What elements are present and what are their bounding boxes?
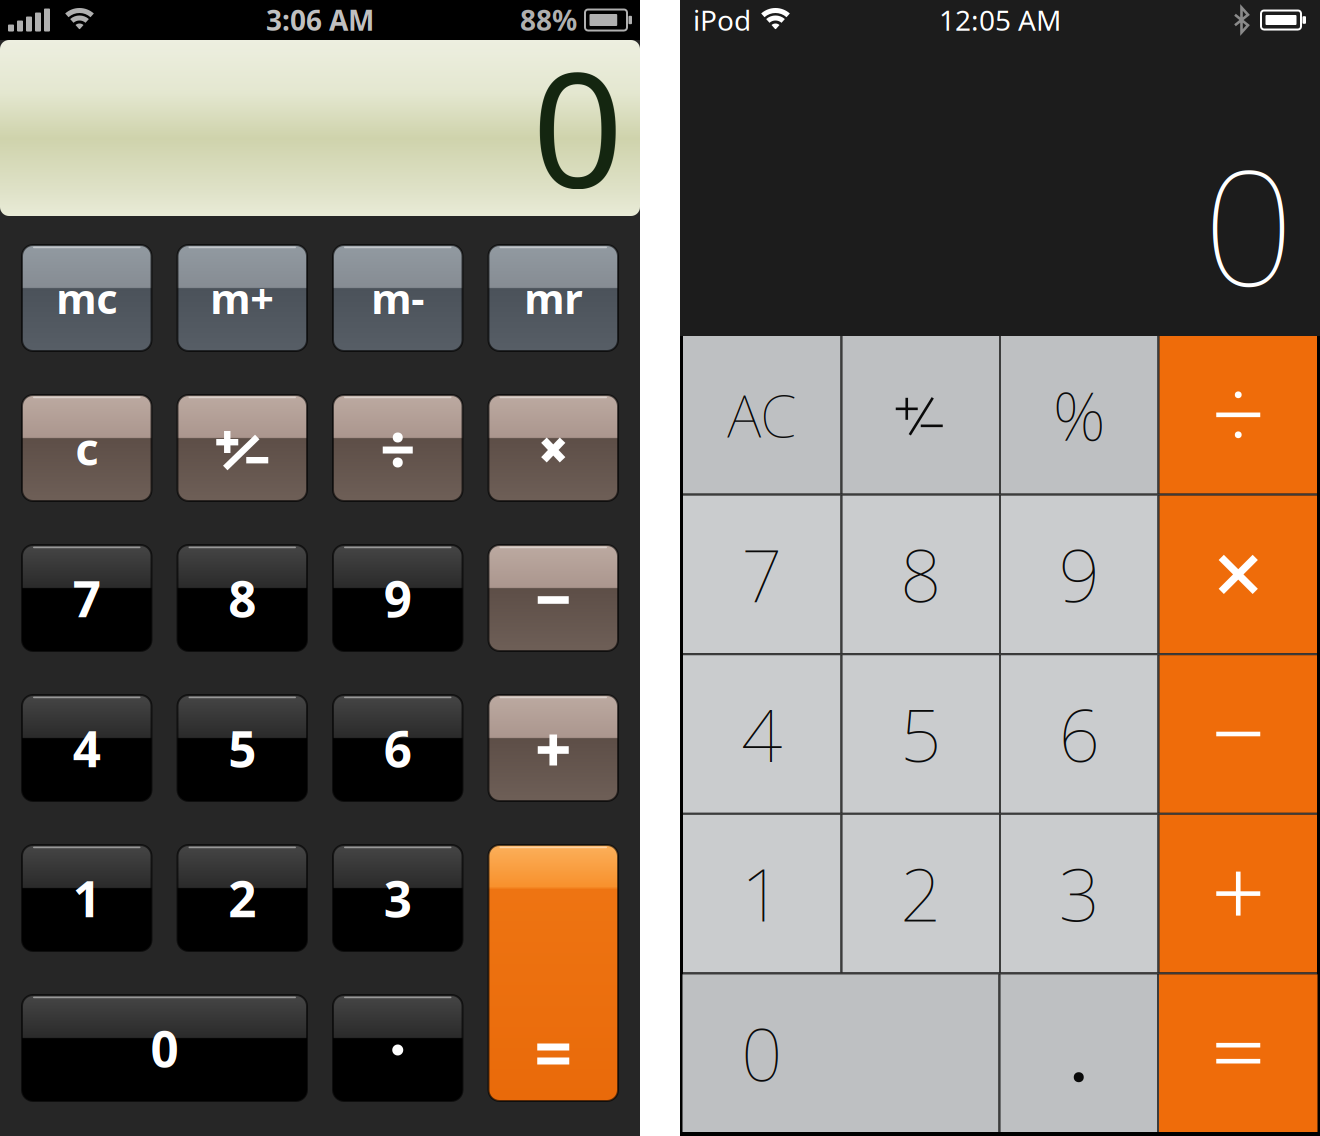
button[interactable]: 5 — [177, 695, 307, 801]
staticText: m- — [371, 271, 424, 325]
staticText: 4 — [741, 686, 782, 782]
button[interactable]: 0 — [682, 974, 998, 1132]
button[interactable]: Plus — [488, 695, 618, 801]
staticText: 7 — [741, 527, 782, 622]
staticText: m+ — [210, 271, 274, 325]
staticText: 4 — [73, 715, 101, 781]
button[interactable]: Multiply — [1159, 496, 1317, 653]
button[interactable]: 7 — [22, 545, 151, 651]
staticText: iPod — [693, 1, 751, 39]
button[interactable]: mc — [22, 245, 151, 351]
staticText: mc — [56, 271, 117, 325]
button[interactable]: Divide — [333, 395, 462, 501]
button[interactable]: Multiply — [488, 395, 618, 501]
button[interactable]: Minus — [488, 545, 618, 651]
staticText: 1 — [73, 865, 101, 931]
button[interactable]: m- — [333, 245, 462, 351]
staticText: 5 — [228, 715, 256, 781]
button[interactable]: 2 — [177, 845, 307, 951]
staticText: 2 — [228, 865, 256, 931]
button[interactable]: 9 — [333, 545, 462, 651]
staticText: 8 — [900, 527, 941, 622]
button[interactable]: 3 — [333, 845, 462, 951]
button[interactable]: Equals — [1159, 974, 1317, 1132]
button[interactable]: Decimal point — [1000, 974, 1157, 1132]
button[interactable]: 4 — [22, 695, 151, 801]
button[interactable]: Decimal point — [333, 995, 462, 1101]
staticText: 12:05 AM — [939, 1, 1061, 39]
button[interactable]: 8 — [177, 545, 307, 651]
staticText: 2 — [900, 846, 941, 941]
staticText: mr — [524, 271, 582, 325]
button[interactable]: Plus minus — [177, 395, 307, 501]
staticText: 7 — [73, 565, 101, 631]
button[interactable]: Divide — [1159, 336, 1317, 494]
button[interactable]: Plus minus — [842, 336, 999, 494]
staticText: 6 — [1059, 686, 1100, 782]
button[interactable]: 6 — [333, 695, 462, 801]
button[interactable]: Equals — [488, 845, 618, 1101]
staticText: 9 — [384, 565, 412, 631]
button[interactable]: Clear — [22, 395, 151, 501]
button[interactable]: 8 — [842, 496, 999, 653]
staticText: AC — [727, 376, 796, 454]
staticText: 3 — [384, 865, 412, 931]
staticText: 3 — [1059, 846, 1100, 941]
staticText: 88% — [520, 1, 577, 39]
staticText: 8 — [228, 565, 256, 631]
button[interactable]: 1 — [683, 815, 840, 972]
staticText: 5 — [900, 686, 941, 782]
staticText: % — [1053, 370, 1106, 459]
staticText: 0 — [741, 1005, 782, 1101]
button[interactable]: 6 — [1001, 655, 1157, 813]
staticText: 9 — [1059, 527, 1100, 622]
staticText: 1 — [741, 846, 782, 941]
button[interactable]: 0 — [22, 995, 307, 1101]
staticText: 0 — [150, 1015, 178, 1081]
staticText: c — [75, 418, 98, 478]
button[interactable]: AC — [683, 336, 840, 494]
staticText: 3:06 AM — [266, 1, 374, 39]
staticText: 0 — [532, 19, 624, 231]
button[interactable]: 4 — [683, 655, 840, 813]
button[interactable]: 9 — [1001, 496, 1157, 653]
button[interactable]: Minus — [1159, 655, 1317, 813]
staticText: 6 — [384, 715, 412, 781]
button[interactable]: 7 — [683, 496, 840, 653]
button[interactable]: % — [1001, 336, 1157, 494]
button[interactable]: 2 — [842, 815, 999, 972]
button[interactable]: 3 — [1001, 815, 1157, 972]
staticText: 0 — [1203, 117, 1294, 329]
button[interactable]: Plus — [1159, 815, 1317, 972]
button[interactable]: mr — [488, 245, 618, 351]
button[interactable]: m+ — [177, 245, 307, 351]
button[interactable]: 5 — [842, 655, 999, 813]
button[interactable]: 1 — [22, 845, 151, 951]
